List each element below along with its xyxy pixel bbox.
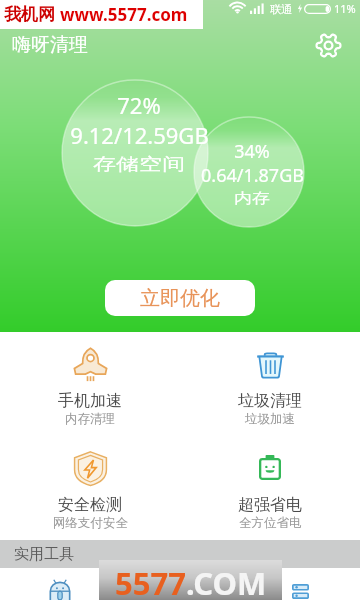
staticText: 垃圾加速 [245,411,295,427]
staticText: .COM [186,562,267,600]
staticText: 垃圾清理 [238,391,302,411]
staticText: 安全检测 [58,495,122,515]
staticText: 网络支付安全 [53,515,128,531]
button[interactable]: App manager [49,579,71,600]
staticText: www.5577.com [60,3,188,26]
staticText: 34% [234,139,270,164]
staticText: 超强省电 [238,495,302,515]
button[interactable]: 手机加速 [0,332,180,436]
button[interactable]: 立即优化 [105,280,255,316]
staticText: 存储空间 [93,154,185,175]
staticText: 5577 [115,562,186,600]
staticText: 内存 [234,189,270,208]
button[interactable]: Storage [292,584,309,599]
button[interactable]: Settings [311,28,345,62]
staticText: 实用工具 [14,545,74,564]
staticText: 0.64/1.87GB [201,163,304,188]
staticText: 手机加速 [58,391,122,411]
button[interactable]: 超强省电 [180,436,360,540]
button[interactable]: 安全检测 [0,436,180,540]
button[interactable]: 垃圾清理 [180,332,360,436]
staticText: 11% [334,1,356,16]
staticText: 立即优化 [140,286,220,311]
staticText: 嗨呀清理 [12,33,88,57]
staticText: 全方位省电 [239,515,302,531]
staticText: 内存清理 [65,411,115,427]
staticText: 我机网 [4,4,55,25]
staticText: 联通 [270,2,292,16]
staticText: 9.12/12.59GB [70,120,209,150]
staticText: 72% [117,90,161,120]
